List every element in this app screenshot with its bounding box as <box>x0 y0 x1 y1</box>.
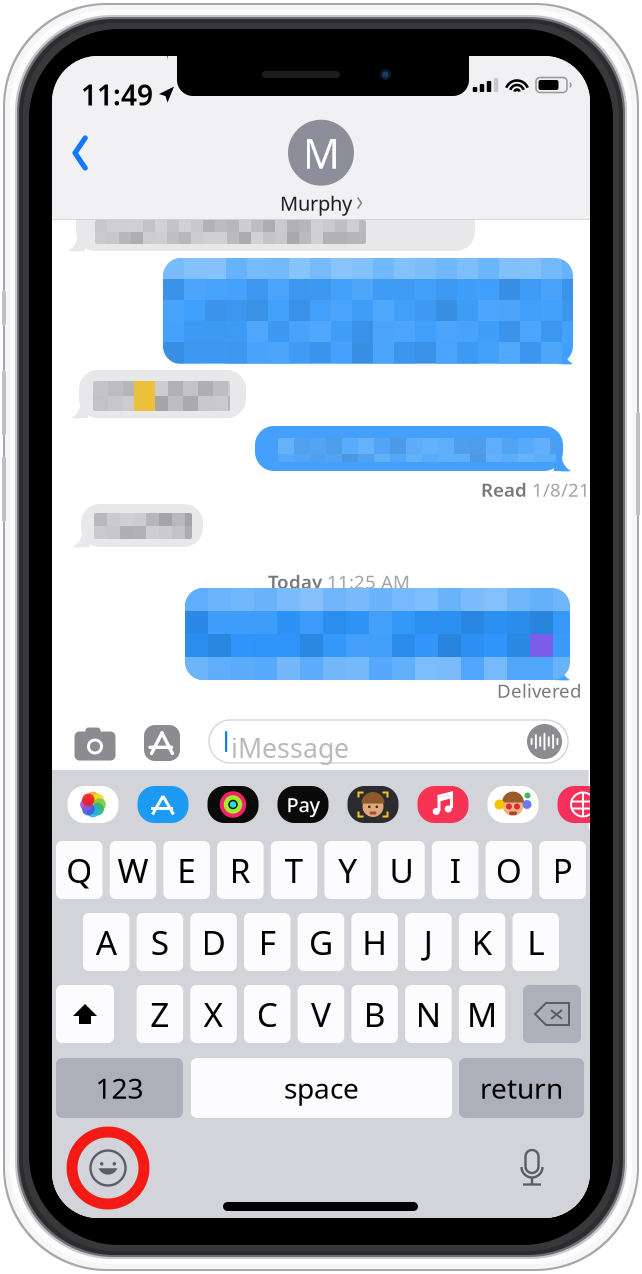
staticText: V <box>311 992 331 1036</box>
button[interactable]: Delete <box>523 985 581 1043</box>
staticText: J <box>424 920 433 964</box>
button[interactable]: I <box>432 841 478 899</box>
staticText: X <box>204 992 224 1036</box>
button[interactable]: Q <box>56 841 102 899</box>
button[interactable] <box>207 786 258 823</box>
staticText: 123 <box>95 1069 143 1107</box>
staticText: Q <box>66 848 92 892</box>
button[interactable]: iMessage <box>209 720 568 763</box>
staticText: S <box>151 920 169 964</box>
button[interactable]: space <box>191 1058 452 1118</box>
staticText: N <box>416 992 441 1036</box>
staticText: M <box>302 125 339 180</box>
button[interactable]: B <box>351 985 398 1043</box>
staticText: T <box>285 848 304 892</box>
button[interactable]: N <box>405 985 452 1043</box>
button[interactable]: G <box>298 913 344 971</box>
button[interactable]: W <box>110 841 156 899</box>
staticText: Delivered <box>497 678 581 703</box>
staticText: D <box>202 920 226 964</box>
button[interactable]: 123 <box>56 1058 183 1118</box>
staticText: Y <box>338 848 357 892</box>
button[interactable]: A <box>83 913 129 971</box>
button[interactable]: X <box>190 985 237 1043</box>
staticText: 11:25 AM <box>327 569 410 594</box>
staticText: 11:49 <box>81 76 153 113</box>
button[interactable]: Dictation <box>510 1146 554 1190</box>
staticText: U <box>389 848 413 892</box>
button[interactable]: R <box>217 841 264 899</box>
button[interactable] <box>417 786 468 823</box>
button[interactable]: Back <box>59 131 103 175</box>
button[interactable]: J <box>405 913 452 971</box>
staticText: P <box>552 848 572 892</box>
button[interactable]: U <box>378 841 425 899</box>
staticText: G <box>309 920 333 964</box>
staticText: 1/8/21 <box>532 477 590 502</box>
staticText: M <box>467 992 497 1036</box>
staticText: K <box>471 920 492 964</box>
staticText: space <box>284 1069 359 1107</box>
button[interactable]: M <box>241 118 401 218</box>
staticText: Z <box>150 992 169 1036</box>
staticText: Pay <box>286 791 320 818</box>
button[interactable]: L <box>512 913 559 971</box>
button[interactable]: return <box>459 1058 584 1118</box>
button[interactable]: Y <box>324 841 371 899</box>
button[interactable] <box>277 786 328 823</box>
staticText: I <box>450 848 461 892</box>
staticText: Read <box>481 477 527 502</box>
staticText: R <box>230 848 251 892</box>
button[interactable]: C <box>244 985 290 1043</box>
staticText: iMessage <box>231 730 349 765</box>
staticText: L <box>527 920 544 964</box>
button[interactable]: K <box>459 913 505 971</box>
button[interactable] <box>487 786 538 823</box>
button[interactable] <box>347 786 398 823</box>
button[interactable]: P <box>539 841 586 899</box>
staticText: B <box>364 992 386 1036</box>
staticText: H <box>362 920 387 964</box>
staticText: return <box>480 1069 563 1107</box>
button[interactable]: Camera <box>73 720 117 764</box>
button[interactable]: Shift <box>56 985 114 1043</box>
button[interactable]: S <box>137 913 183 971</box>
staticText: Today <box>268 569 322 594</box>
button[interactable]: H <box>351 913 398 971</box>
button[interactable]: O <box>486 841 532 899</box>
staticText: O <box>496 848 522 892</box>
button[interactable]: T <box>271 841 317 899</box>
button[interactable] <box>557 786 608 823</box>
button[interactable]: F <box>244 913 290 971</box>
button[interactable]: Z <box>137 985 183 1043</box>
staticText: F <box>259 920 276 964</box>
staticText: E <box>177 848 196 892</box>
staticText: W <box>117 848 148 892</box>
staticText: Murphy <box>280 190 352 216</box>
button[interactable]: Emoji keyboard <box>86 1146 130 1190</box>
button[interactable] <box>67 786 118 823</box>
button[interactable]: App Store <box>140 721 184 765</box>
button[interactable]: E <box>163 841 210 899</box>
button[interactable]: V <box>298 985 344 1043</box>
staticText: A <box>96 920 117 964</box>
button[interactable]: D <box>190 913 237 971</box>
staticText: C <box>257 992 278 1036</box>
button[interactable]: M <box>459 985 505 1043</box>
button[interactable] <box>137 786 188 823</box>
